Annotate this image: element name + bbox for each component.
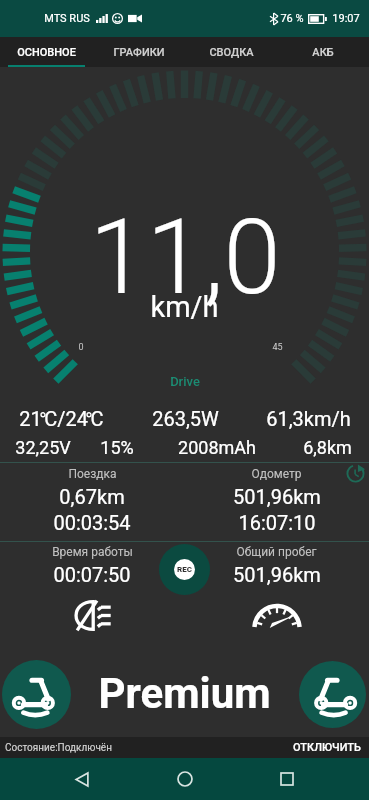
staticText: 0,67km [59, 485, 125, 508]
button[interactable]: ОТКЛЮЧИТЬ [293, 737, 361, 758]
staticText: Одометр [251, 467, 302, 481]
staticText: Drive [170, 374, 200, 389]
staticText: АКБ [312, 46, 334, 59]
staticText: 16:07:10 [238, 511, 316, 534]
staticText: Время работы [52, 545, 133, 559]
button[interactable]: СВОДКА [185, 37, 277, 67]
staticText: ОТКЛЮЧИТЬ [293, 741, 361, 754]
staticText: 501,96km [233, 485, 321, 508]
staticText: 263,5W [152, 407, 219, 429]
button[interactable]: Scooter model [299, 661, 366, 728]
staticText: C/24 [44, 407, 88, 429]
staticText: 15% [100, 437, 134, 458]
button[interactable]: ОСНОВНОЕ [0, 37, 93, 67]
staticText: Premium [98, 669, 271, 718]
staticText: 32,25V [15, 437, 71, 458]
staticText: REC [177, 565, 192, 574]
staticText: Общий пробег [236, 545, 317, 559]
staticText: C [90, 407, 104, 429]
staticText: 45 [272, 342, 283, 353]
staticText: 76 % [280, 12, 304, 25]
button[interactable]: Scooter profile [2, 660, 71, 729]
staticText: km/h [150, 290, 219, 324]
staticText: 00:03:54 [53, 511, 131, 534]
staticText: 11,0 [89, 197, 281, 318]
staticText: Состояние:Подключён [5, 742, 112, 754]
staticText: 0 [78, 342, 84, 353]
staticText: 00:07:50 [53, 563, 131, 586]
staticText: 501,96km [233, 563, 321, 586]
staticText: 19:07 [332, 12, 360, 25]
staticText: СВОДКА [209, 46, 254, 59]
button[interactable]: Headlight off [72, 599, 115, 632]
staticText: 21 [19, 407, 42, 429]
button[interactable]: Recent apps [266, 758, 308, 800]
button[interactable]: Cruise control [251, 601, 303, 630]
staticText: MTS RUS [44, 12, 90, 25]
button[interactable]: Reset trip [346, 464, 365, 483]
button[interactable]: Home [164, 758, 206, 800]
staticText: 61,3km/h [266, 407, 351, 429]
staticText: ОСНОВНОЕ [17, 46, 76, 59]
staticText: Поездка [68, 467, 117, 481]
staticText: 2008mAh [178, 437, 256, 458]
staticText: ГРАФИКИ [113, 46, 165, 59]
staticText: 6,8km [303, 437, 352, 458]
button[interactable]: Record [159, 544, 210, 595]
button[interactable]: АКБ [277, 37, 369, 67]
button[interactable]: ГРАФИКИ [93, 37, 185, 67]
button[interactable]: Back [61, 758, 103, 800]
